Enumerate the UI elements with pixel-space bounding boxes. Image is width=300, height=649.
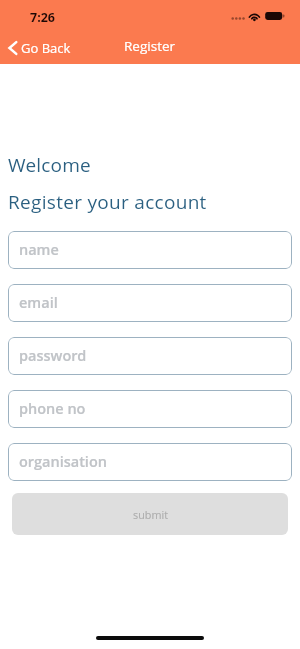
button[interactable]: password — [8, 337, 292, 375]
button[interactable]: organisation — [8, 443, 292, 481]
staticText: Welcome — [8, 152, 91, 178]
button[interactable]: Go Back — [0, 37, 79, 59]
button[interactable]: submit — [12, 493, 288, 535]
staticText: password — [19, 346, 87, 366]
button[interactable]: name — [8, 231, 292, 269]
staticText: Register — [124, 37, 176, 55]
staticText: 7:26 — [30, 9, 55, 26]
staticText: organisation — [19, 452, 107, 472]
staticText: email — [19, 293, 58, 313]
button[interactable]: email — [8, 284, 292, 322]
staticText: submit — [133, 507, 168, 522]
button[interactable]: phone no — [8, 390, 292, 428]
staticText: phone no — [19, 399, 86, 419]
staticText: Go Back — [21, 39, 71, 57]
staticText: name — [19, 240, 59, 260]
staticText: Register your account — [8, 189, 207, 215]
